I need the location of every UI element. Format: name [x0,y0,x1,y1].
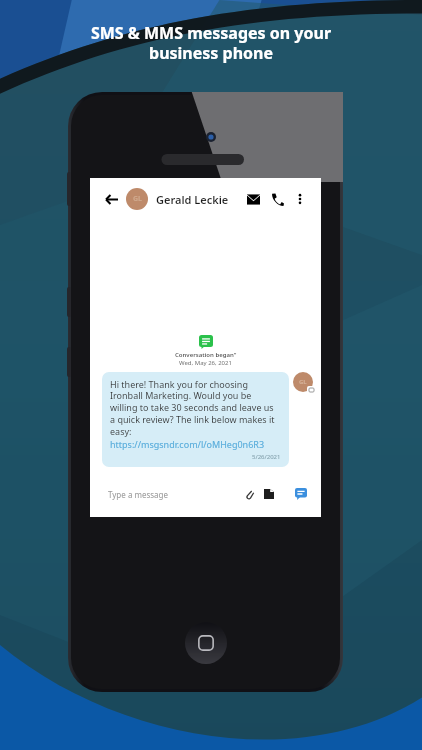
button[interactable]: Attach document [259,484,279,504]
staticText: Hi there! Thank you for choosing Ironbal… [110,378,281,438]
staticText: 5/26/2021 [252,453,281,461]
button[interactable]: Send message [289,482,313,506]
staticText: Conversation began" [175,351,237,359]
button[interactable]: Back [100,188,122,210]
staticText: Type a message [108,489,169,500]
button[interactable]: More options [289,188,311,210]
staticText: https://msgsndr.com/l/oMHeg0n6R3 [110,438,265,450]
button[interactable]: Contact avatar [126,188,148,210]
staticText: Wed, May 26, 2021 [179,359,232,367]
staticText: Gerald Leckie [156,192,229,207]
staticText: GL [299,378,307,386]
staticText: GL [133,194,142,204]
staticText: SMS & MMS messages on your business phon… [24,22,398,63]
button[interactable]: Hi there! Thank you for choosing Ironbal… [102,372,289,467]
button[interactable]: Type a message [98,481,285,507]
button[interactable]: Call [265,187,289,211]
button[interactable]: Attach file [239,484,259,504]
button[interactable]: Email [241,187,265,211]
